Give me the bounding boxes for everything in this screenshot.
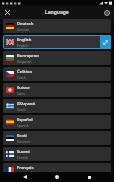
button[interactable]: Ελληνικά [3,99,111,113]
button[interactable]: Close [2,7,13,18]
button[interactable]: Settings [101,7,112,18]
button[interactable]: Deutsch [3,19,111,33]
staticText: Swiss [17,92,26,96]
staticText: Deutsch [17,21,34,27]
staticText: English [17,37,32,43]
staticText: Spanish [17,124,29,128]
button[interactable]: Home [50,172,64,182]
button[interactable]: English [3,35,111,49]
staticText: Suisse [17,85,30,91]
staticText: English [17,44,28,48]
staticText: Greek [17,108,26,112]
staticText: Ελληνικά [17,101,36,107]
staticText: Bulgarian [17,60,32,64]
staticText: Čeština [17,69,32,75]
staticText: Eesti [17,133,27,139]
button[interactable]: Čeština [3,67,111,81]
button[interactable]: Recent apps [82,172,96,182]
staticText: Suomi [17,149,30,155]
staticText: Czech [17,76,26,80]
staticText: German [17,28,30,32]
staticText: Finnish [17,156,28,160]
staticText: Language [45,9,69,16]
button[interactable]: Български [3,51,111,65]
staticText: Español [17,117,33,123]
staticText: Estonian [17,140,30,144]
button[interactable]: Español [3,115,111,129]
staticText: Български [17,53,39,59]
button[interactable]: Suisse [3,83,111,97]
button[interactable]: Eesti [3,131,111,145]
staticText: Français [17,165,34,171]
button[interactable]: Download language [100,35,111,49]
button[interactable]: Français [3,163,111,172]
button[interactable]: Suomi [3,147,111,161]
button[interactable]: Back [18,172,32,182]
